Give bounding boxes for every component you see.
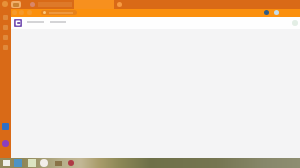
button[interactable]: Extension (274, 10, 279, 15)
button[interactable]: Profile (264, 10, 269, 15)
button[interactable]: Reload (27, 10, 32, 15)
button[interactable]: Record (68, 160, 74, 166)
button[interactable]: Address bar (41, 10, 77, 15)
button[interactable]: Ubuntu menu (2, 1, 8, 7)
button[interactable]: Dash (3, 15, 8, 20)
button[interactable]: App (40, 159, 48, 167)
button[interactable]: Amazon (2, 140, 9, 147)
button[interactable]: Tab (11, 1, 21, 8)
button[interactable]: Files (3, 25, 8, 30)
button[interactable]: Software (3, 45, 8, 50)
button[interactable]: Forward (19, 10, 24, 15)
button[interactable]: Back (12, 10, 17, 15)
button[interactable]: Writer (3, 35, 8, 40)
button[interactable]: Settings (2, 123, 9, 130)
